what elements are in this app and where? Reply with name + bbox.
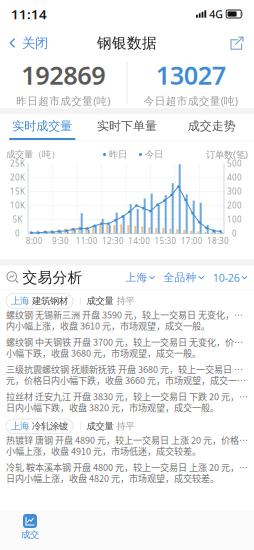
- staticText: 全品种: [164, 271, 197, 284]
- staticText: 元，价格日内小幅下跌，收盘 3660 元，市场观望，成交一般。: [6, 373, 248, 387]
- staticText: 螺纹钢 中天钢铁 开盘 3700 元，较上一交易日 无变化，价格日内: [6, 335, 248, 348]
- staticText: 10K: [10, 200, 25, 211]
- staticText: 14:00: [128, 235, 150, 246]
- staticText: 18:30: [207, 235, 229, 246]
- staticText: 100: [227, 214, 242, 225]
- staticText: 冷轧 鞍本溪本钢 开盘 4800 元，较上一交易日 上涨 20 元，价格日: [6, 460, 248, 473]
- staticText: 持平: [117, 420, 135, 432]
- staticText: 实时成交量: [12, 119, 72, 133]
- staticText: 昨日超市成交量(吨): [16, 94, 110, 108]
- staticText: 建筑钢材: [32, 295, 68, 307]
- staticText: 上海: [11, 420, 29, 432]
- staticText: 8:00: [26, 235, 43, 246]
- staticText: 成交量（吨）: [6, 149, 60, 160]
- staticText: 11:00: [76, 235, 98, 246]
- staticText: 200: [227, 200, 242, 211]
- button[interactable]: 10-26: [213, 270, 247, 285]
- button[interactable]: 成交走势: [169, 114, 254, 140]
- staticText: 0: [232, 228, 237, 239]
- staticText: 热镀锌 唐钢 开盘 4890 元，较上一交易日 上涨 20 元，价格日内: [6, 433, 248, 446]
- staticText: 4G: [209, 7, 223, 21]
- staticText: 螺纹钢 无锡新三洲 开盘 3590 元，较上一交易日 无变化，价格日: [6, 308, 248, 321]
- button[interactable]: 上海: [125, 271, 155, 284]
- button[interactable]: 全品种: [164, 271, 204, 284]
- staticText: 500: [227, 158, 242, 169]
- staticText: 13027: [156, 58, 226, 92]
- staticText: 400: [227, 172, 242, 183]
- staticText: 上海: [125, 271, 147, 284]
- button[interactable]: 关闭: [0, 28, 57, 58]
- staticText: 小幅上涨，收盘 4910 元，市场低迷，成交较差。: [6, 444, 201, 457]
- staticText: 9:30: [52, 235, 69, 246]
- staticText: 今日超市成交量(吨): [144, 94, 238, 108]
- staticText: 成交量: [87, 295, 114, 307]
- staticText: 内小幅上涨，收盘 3610 元，市场观望，成交一般。: [6, 319, 210, 332]
- staticText: 成交: [21, 529, 39, 540]
- staticText: 20K: [10, 172, 25, 183]
- button[interactable]: 分享: [220, 28, 254, 58]
- staticText: 持平: [117, 295, 135, 307]
- staticText: 三级抗震螺纹钢 抚顺新抚铁 开盘 3680 元，较上一交易日 下跌 10: [6, 362, 248, 376]
- staticText: 11:14: [11, 5, 47, 23]
- button[interactable]: 实时成交量: [0, 114, 85, 140]
- staticText: 上海: [11, 295, 29, 307]
- staticText: 12:30: [102, 235, 124, 246]
- staticText: 实时下单量: [97, 119, 157, 133]
- staticText: 0: [15, 228, 20, 239]
- staticText: 今日: [145, 149, 163, 160]
- staticText: 成交量: [87, 420, 114, 432]
- staticText: 小幅下跌，收盘 3680 元，市场观望，成交一般。: [6, 346, 201, 359]
- staticText: 交易分析: [22, 268, 82, 286]
- staticText: 成交走势: [188, 119, 236, 133]
- staticText: 关闭: [22, 35, 48, 51]
- staticText: 日内小幅下跌，收盘 3820 元，市场观望，成交一般。: [6, 401, 219, 414]
- staticText: 订单数(笔): [206, 148, 248, 161]
- staticText: 25K: [10, 158, 25, 169]
- button[interactable]: 实时下单量: [85, 114, 169, 140]
- staticText: 拉丝材 迁安九江 开盘 3830 元，较上一交易日 下跌 20 元，价格: [6, 390, 248, 403]
- staticText: 15K: [10, 186, 25, 197]
- staticText: 日内小幅上涨，收盘 4820 元，市场观望，成交较差。: [6, 471, 219, 484]
- button[interactable]: 成交: [0, 514, 60, 540]
- staticText: 10-26: [213, 270, 240, 285]
- staticText: 192869: [21, 58, 105, 92]
- staticText: 15:30: [154, 235, 176, 246]
- staticText: 5K: [12, 214, 22, 225]
- staticText: 冷轧涂镀: [32, 420, 68, 432]
- staticText: 300: [227, 186, 242, 197]
- staticText: 钢银数据: [97, 34, 157, 52]
- staticText: 昨日: [109, 149, 127, 160]
- staticText: 17:00: [181, 235, 203, 246]
